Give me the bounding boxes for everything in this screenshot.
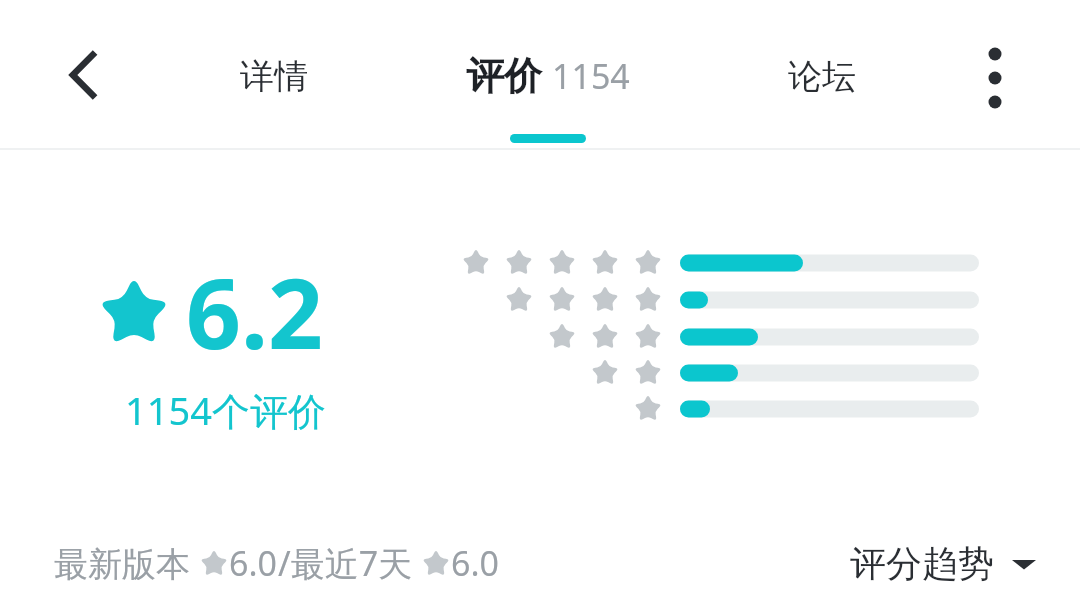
staticText: 6.2 xyxy=(186,246,323,377)
button[interactable]: 详情 xyxy=(196,40,352,112)
staticText: 6.0 xyxy=(451,540,500,586)
button[interactable]: 论坛 xyxy=(744,40,900,112)
staticText: 论坛 xyxy=(788,55,856,98)
button[interactable]: 评价 xyxy=(420,40,676,112)
staticText: 最新版本 xyxy=(54,540,199,586)
button[interactable]: More options xyxy=(950,38,1040,118)
staticText: 评分趋势 xyxy=(850,541,994,586)
staticText: 6.0 xyxy=(229,540,278,586)
staticText: 1154个评价 xyxy=(125,384,326,436)
staticText: 1154 xyxy=(552,53,630,99)
button[interactable]: Back xyxy=(36,42,132,108)
staticText: /最近7天 xyxy=(278,540,421,586)
button[interactable]: 评分趋势 xyxy=(842,531,1044,596)
staticText: 详情 xyxy=(240,55,308,98)
staticText: 评价 xyxy=(466,52,542,100)
